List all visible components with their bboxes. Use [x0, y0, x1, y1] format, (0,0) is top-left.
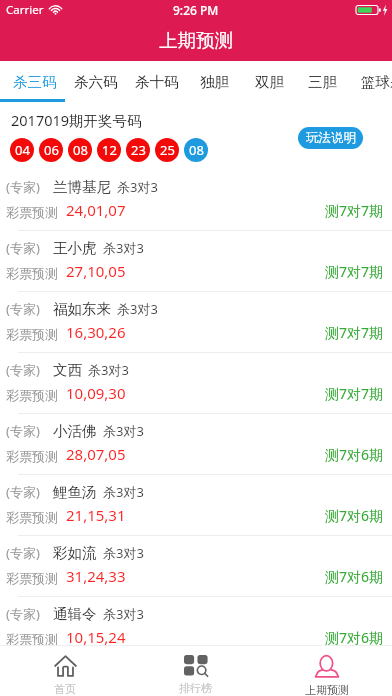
staticText: 彩票预测 — [6, 326, 58, 342]
staticText: 彩如流 — [53, 544, 97, 562]
staticText: 16,30,26 — [66, 322, 126, 342]
staticText: 上期预测 — [305, 683, 349, 696]
staticText: 彩票预测 — [6, 631, 58, 647]
button[interactable]: 双胆 — [251, 61, 288, 102]
staticText: 小活佛 — [53, 422, 97, 440]
staticText: (专家) — [6, 361, 40, 379]
staticText: 测7对6期 — [325, 506, 384, 525]
staticText: 杀3对3 — [103, 239, 144, 257]
button[interactable]: (专家) — [0, 536, 392, 597]
staticText: 彩票预测 — [6, 265, 58, 281]
staticText: 08 — [189, 141, 204, 159]
staticText: 杀六码 — [74, 73, 118, 91]
staticText: 双胆 — [255, 73, 284, 91]
button[interactable]: 杀六码 — [70, 61, 122, 102]
staticText: 彩票预测 — [6, 448, 58, 464]
staticText: 杀3对3 — [103, 544, 144, 562]
staticText: (专家) — [6, 483, 40, 501]
staticText: 鲤鱼汤 — [53, 483, 97, 501]
staticText: 玩法说明 — [306, 130, 356, 146]
staticText: 04 — [15, 141, 30, 159]
staticText: 24,01,07 — [66, 200, 126, 220]
staticText: 篮球杀 — [361, 73, 392, 91]
staticText: (专家) — [6, 544, 40, 562]
staticText: 彩票预测 — [6, 509, 58, 525]
button[interactable]: 上期预测 — [261, 646, 392, 696]
staticText: 文西 — [53, 361, 82, 379]
other: 首页 — [54, 655, 77, 677]
staticText: 杀3对3 — [103, 422, 144, 440]
staticText: (专家) — [6, 239, 40, 257]
staticText: 三胆 — [308, 73, 337, 91]
staticText: 08 — [73, 141, 88, 159]
button[interactable]: (专家) — [0, 414, 392, 475]
staticText: 杀3对3 — [88, 361, 129, 379]
staticText: 12 — [102, 141, 117, 159]
button[interactable]: 排行榜 — [130, 646, 261, 696]
staticText: 杀3对3 — [103, 605, 144, 623]
button[interactable]: (专家) — [0, 353, 392, 414]
button[interactable]: 杀十码 — [131, 61, 183, 102]
staticText: Carrier — [6, 2, 44, 18]
staticText: (专家) — [6, 605, 40, 623]
staticText: 2017019期开奖号码 — [11, 110, 142, 130]
staticText: 测7对7期 — [325, 201, 384, 220]
button[interactable]: 首页 — [0, 646, 130, 696]
other: 排行榜 — [184, 655, 207, 676]
staticText: 独胆 — [200, 73, 229, 91]
staticText: (专家) — [6, 178, 40, 196]
button[interactable]: 三胆 — [304, 61, 341, 102]
button[interactable]: (专家) — [0, 475, 392, 536]
staticText: 测7对7期 — [325, 323, 384, 342]
staticText: (专家) — [6, 422, 40, 440]
staticText: 9:26 PM — [173, 2, 219, 18]
staticText: 杀3对3 — [117, 178, 158, 196]
staticText: 测7对6期 — [325, 567, 384, 586]
staticText: 彩票预测 — [6, 204, 58, 220]
staticText: 测7对6期 — [325, 445, 384, 464]
staticText: 21,15,31 — [66, 505, 126, 525]
staticText: 通辑令 — [53, 605, 97, 623]
staticText: 杀十码 — [135, 73, 179, 91]
button[interactable]: (专家) — [0, 231, 392, 292]
staticText: 杀三码 — [13, 73, 57, 91]
staticText: 杀3对3 — [117, 300, 158, 318]
staticText: 25 — [160, 141, 175, 159]
button[interactable]: 杀三码 — [9, 61, 61, 102]
staticText: 排行榜 — [179, 681, 212, 695]
staticText: 首页 — [54, 682, 76, 696]
button[interactable]: (专家) — [0, 597, 392, 658]
staticText: 杀3对3 — [103, 483, 144, 501]
staticText: 28,07,05 — [66, 444, 126, 464]
staticText: 27,10,05 — [66, 261, 126, 281]
staticText: 测7对6期 — [325, 628, 384, 647]
button[interactable]: 篮球杀 — [357, 61, 392, 102]
staticText: 31,24,33 — [66, 566, 126, 586]
button[interactable]: 玩法说明 — [298, 127, 363, 149]
staticText: 23 — [131, 141, 146, 159]
staticText: 兰博基尼 — [53, 178, 111, 196]
staticText: 10,15,24 — [66, 627, 126, 647]
staticText: 彩票预测 — [6, 570, 58, 586]
staticText: (专家) — [6, 300, 40, 318]
button[interactable]: 独胆 — [196, 61, 233, 102]
staticText: 福如东来 — [53, 300, 111, 318]
button[interactable]: (专家) — [0, 170, 392, 231]
staticText: 06 — [44, 141, 59, 159]
staticText: 王小虎 — [53, 239, 97, 257]
staticText: 测7对7期 — [325, 262, 384, 281]
button[interactable]: (专家) — [0, 292, 392, 353]
staticText: 10,09,30 — [66, 383, 126, 403]
staticText: 测7对7期 — [325, 384, 384, 403]
staticText: 彩票预测 — [6, 387, 58, 403]
other: 上期预测 — [315, 655, 339, 678]
staticText: 上期预测 — [159, 29, 233, 52]
